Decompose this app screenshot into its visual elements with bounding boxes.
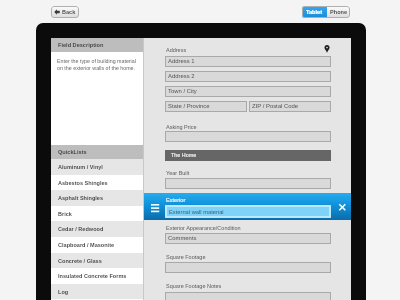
- staticText: Year Built: [166, 170, 190, 176]
- staticText: Concrete / Glass: [58, 258, 102, 264]
- staticText: Tablet: [306, 9, 323, 15]
- button[interactable]: State / Province: [165, 101, 247, 112]
- staticText: Exterior Appearance/Condition: [166, 225, 241, 231]
- button[interactable]: [165, 178, 331, 189]
- button[interactable]: [165, 131, 331, 142]
- button[interactable]: External wall material: [165, 205, 331, 218]
- staticText: Field Description: [58, 42, 104, 48]
- staticText: Address 1: [168, 58, 195, 65]
- staticText: Asphalt Shingles: [58, 195, 103, 201]
- staticText: State / Province: [168, 103, 210, 110]
- button[interactable]: Address 2: [165, 71, 331, 82]
- button[interactable]: Concrete / Glass: [51, 253, 143, 268]
- button[interactable]: Tablet: [302, 6, 327, 18]
- staticText: Comments: [168, 235, 197, 242]
- staticText: Address 2: [168, 73, 195, 80]
- button[interactable]: The Home: [165, 150, 331, 161]
- staticText: Brick: [58, 211, 72, 217]
- button[interactable]: Close: [338, 203, 347, 212]
- staticText: Back: [62, 9, 76, 15]
- staticText: External wall material: [169, 209, 224, 215]
- button[interactable]: Asphalt Shingles: [51, 190, 143, 206]
- staticText: Asbestos Shingles: [58, 180, 108, 186]
- button[interactable]: [165, 262, 331, 273]
- button[interactable]: Address 1: [165, 56, 331, 67]
- button[interactable]: Log: [51, 284, 143, 299]
- button[interactable]: Cedar / Redwood: [51, 221, 143, 237]
- staticText: Asking Price: [166, 124, 197, 130]
- staticText: ZIP / Postal Code: [252, 103, 299, 110]
- button[interactable]: Menu: [151, 204, 160, 213]
- staticText: Log: [58, 289, 69, 295]
- button[interactable]: [165, 292, 331, 300]
- button[interactable]: Brick: [51, 206, 143, 221]
- staticText: Square Footage: [166, 254, 206, 260]
- staticText: Phone: [330, 9, 348, 15]
- staticText: QuickLists: [58, 149, 87, 155]
- staticText: Insulated Concrete Forms: [58, 273, 127, 279]
- staticText: Town / City: [168, 88, 197, 95]
- staticText: Square Footage Notes: [166, 283, 222, 289]
- button[interactable]: Clapboard / Masonite: [51, 237, 143, 253]
- staticText: Exterior: [166, 197, 186, 203]
- button[interactable]: Back: [51, 6, 79, 18]
- staticText: Clapboard / Masonite: [58, 242, 115, 248]
- staticText: Cedar / Redwood: [58, 226, 104, 232]
- staticText: on the exterior walls of the home.: [57, 65, 136, 71]
- button[interactable]: Phone: [327, 6, 350, 18]
- button[interactable]: Locate address: [323, 44, 331, 53]
- button[interactable]: Comments: [165, 233, 331, 244]
- button[interactable]: Town / City: [165, 86, 331, 97]
- button[interactable]: ZIP / Postal Code: [249, 101, 331, 112]
- staticText: Enter the type of building material: [57, 58, 136, 64]
- staticText: The Home: [171, 152, 197, 158]
- staticText: Address: [166, 47, 187, 53]
- button[interactable]: Aluminum / Vinyl: [51, 159, 143, 175]
- staticText: Aluminum / Vinyl: [58, 164, 103, 170]
- button[interactable]: Insulated Concrete Forms: [51, 268, 143, 284]
- button[interactable]: Asbestos Shingles: [51, 175, 143, 190]
